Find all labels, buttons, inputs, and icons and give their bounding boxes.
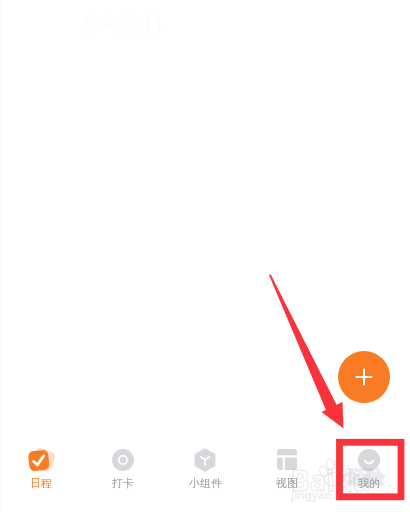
button[interactable]: 日程 [0,440,82,498]
button[interactable]: 视图 [246,440,328,498]
staticText: 日程 [30,476,52,490]
staticText: 打卡 [112,476,134,490]
button[interactable]: Add [338,351,390,403]
staticText: 视图 [276,476,298,490]
staticText: 经验 [348,467,384,490]
staticText: 小组件 [189,476,222,490]
staticText: jingyan.baidu.com [291,487,393,502]
button[interactable]: 我的 [328,440,410,498]
staticText: Baidu [291,461,371,499]
staticText: 我的 [358,476,380,490]
button[interactable]: 小组件 [164,440,246,498]
button[interactable]: 打卡 [82,440,164,498]
